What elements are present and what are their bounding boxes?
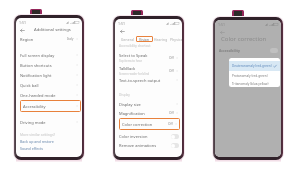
staticText: 1:51 <box>19 20 26 25</box>
button[interactable]: Back <box>18 26 26 34</box>
button[interactable]: One-handed mode <box>16 90 82 100</box>
button[interactable]: Protanomaly (red-green) <box>229 72 280 80</box>
button[interactable]: Hearing <box>154 37 168 41</box>
button[interactable]: Color correction <box>119 118 180 130</box>
staticText: Magnification <box>119 111 145 116</box>
button[interactable]: Remove animations <box>115 140 182 150</box>
staticText: Off <box>169 111 174 115</box>
staticText: Off <box>169 69 174 73</box>
button[interactable]: Driving mode <box>16 117 82 127</box>
button[interactable]: Notification light <box>16 70 82 80</box>
staticText: Protanomaly (red-green) <box>232 74 268 78</box>
staticText: Italy <box>67 37 74 41</box>
staticText: Color correction <box>122 122 153 127</box>
staticText: Button shortcuts <box>20 63 52 68</box>
staticText: Quick ball <box>20 83 39 88</box>
staticText: Off <box>169 56 174 60</box>
staticText: Additional settings <box>34 27 71 33</box>
button[interactable]: Physical <box>170 37 182 41</box>
staticText: Text-to-speech output <box>119 78 161 83</box>
button[interactable]: Button shortcuts <box>16 60 82 70</box>
button[interactable]: Sound effects <box>20 146 44 151</box>
button[interactable]: Color inversion <box>115 131 182 141</box>
button[interactable]: Full screen display <box>16 50 82 60</box>
staticText: Accessibility <box>219 48 240 53</box>
staticText: Color correction <box>221 35 267 43</box>
staticText: Region <box>20 37 34 42</box>
staticText: One-handed mode <box>20 93 56 98</box>
staticText: Display size <box>119 102 141 107</box>
staticText: Vision <box>139 37 150 41</box>
button[interactable]: General <box>121 37 135 41</box>
staticText: Accessibility shortcut <box>119 44 151 48</box>
button[interactable]: Select to Speak <box>115 52 182 64</box>
staticText: More similar settings? <box>20 132 55 137</box>
staticText: Tritanomaly (blue-yellow) <box>232 82 269 86</box>
staticText: Screen reader for blind <box>119 72 150 76</box>
staticText: Tap items to hear <box>119 59 142 63</box>
staticText: Off <box>168 122 173 126</box>
button[interactable]: Tritanomaly (blue-yellow) <box>229 80 280 87</box>
staticText: Remove animations <box>119 143 157 148</box>
button[interactable]: Region <box>16 34 82 44</box>
staticText: Deuteranomaly (red-green) <box>232 64 272 68</box>
staticText: Driving mode <box>20 120 46 125</box>
button[interactable]: Magnification <box>115 108 182 118</box>
staticText: Display <box>119 93 130 97</box>
button[interactable]: Text-to-speech output <box>115 75 182 85</box>
button[interactable]: Display size <box>115 99 182 109</box>
button[interactable]: Back <box>218 28 226 36</box>
button[interactable]: TalkBack <box>115 65 182 77</box>
staticText: Full screen display <box>20 53 55 58</box>
button[interactable]: Deuteranomaly (red-green) <box>229 61 280 71</box>
button[interactable]: Back <box>118 27 126 35</box>
staticText: Color inversion <box>119 134 148 139</box>
staticText: Notification light <box>20 73 52 78</box>
button[interactable]: Quick ball <box>16 80 82 90</box>
button[interactable]: Vision <box>136 36 153 42</box>
staticText: 1:51 <box>118 21 125 26</box>
button[interactable]: Back up and restore <box>20 139 54 144</box>
staticText: 1:51 <box>218 22 225 27</box>
staticText: Select to Speak <box>119 53 148 58</box>
staticText: TalkBack <box>119 66 136 71</box>
button[interactable]: Accessibility <box>20 100 81 112</box>
staticText: Accessibility <box>23 104 46 109</box>
